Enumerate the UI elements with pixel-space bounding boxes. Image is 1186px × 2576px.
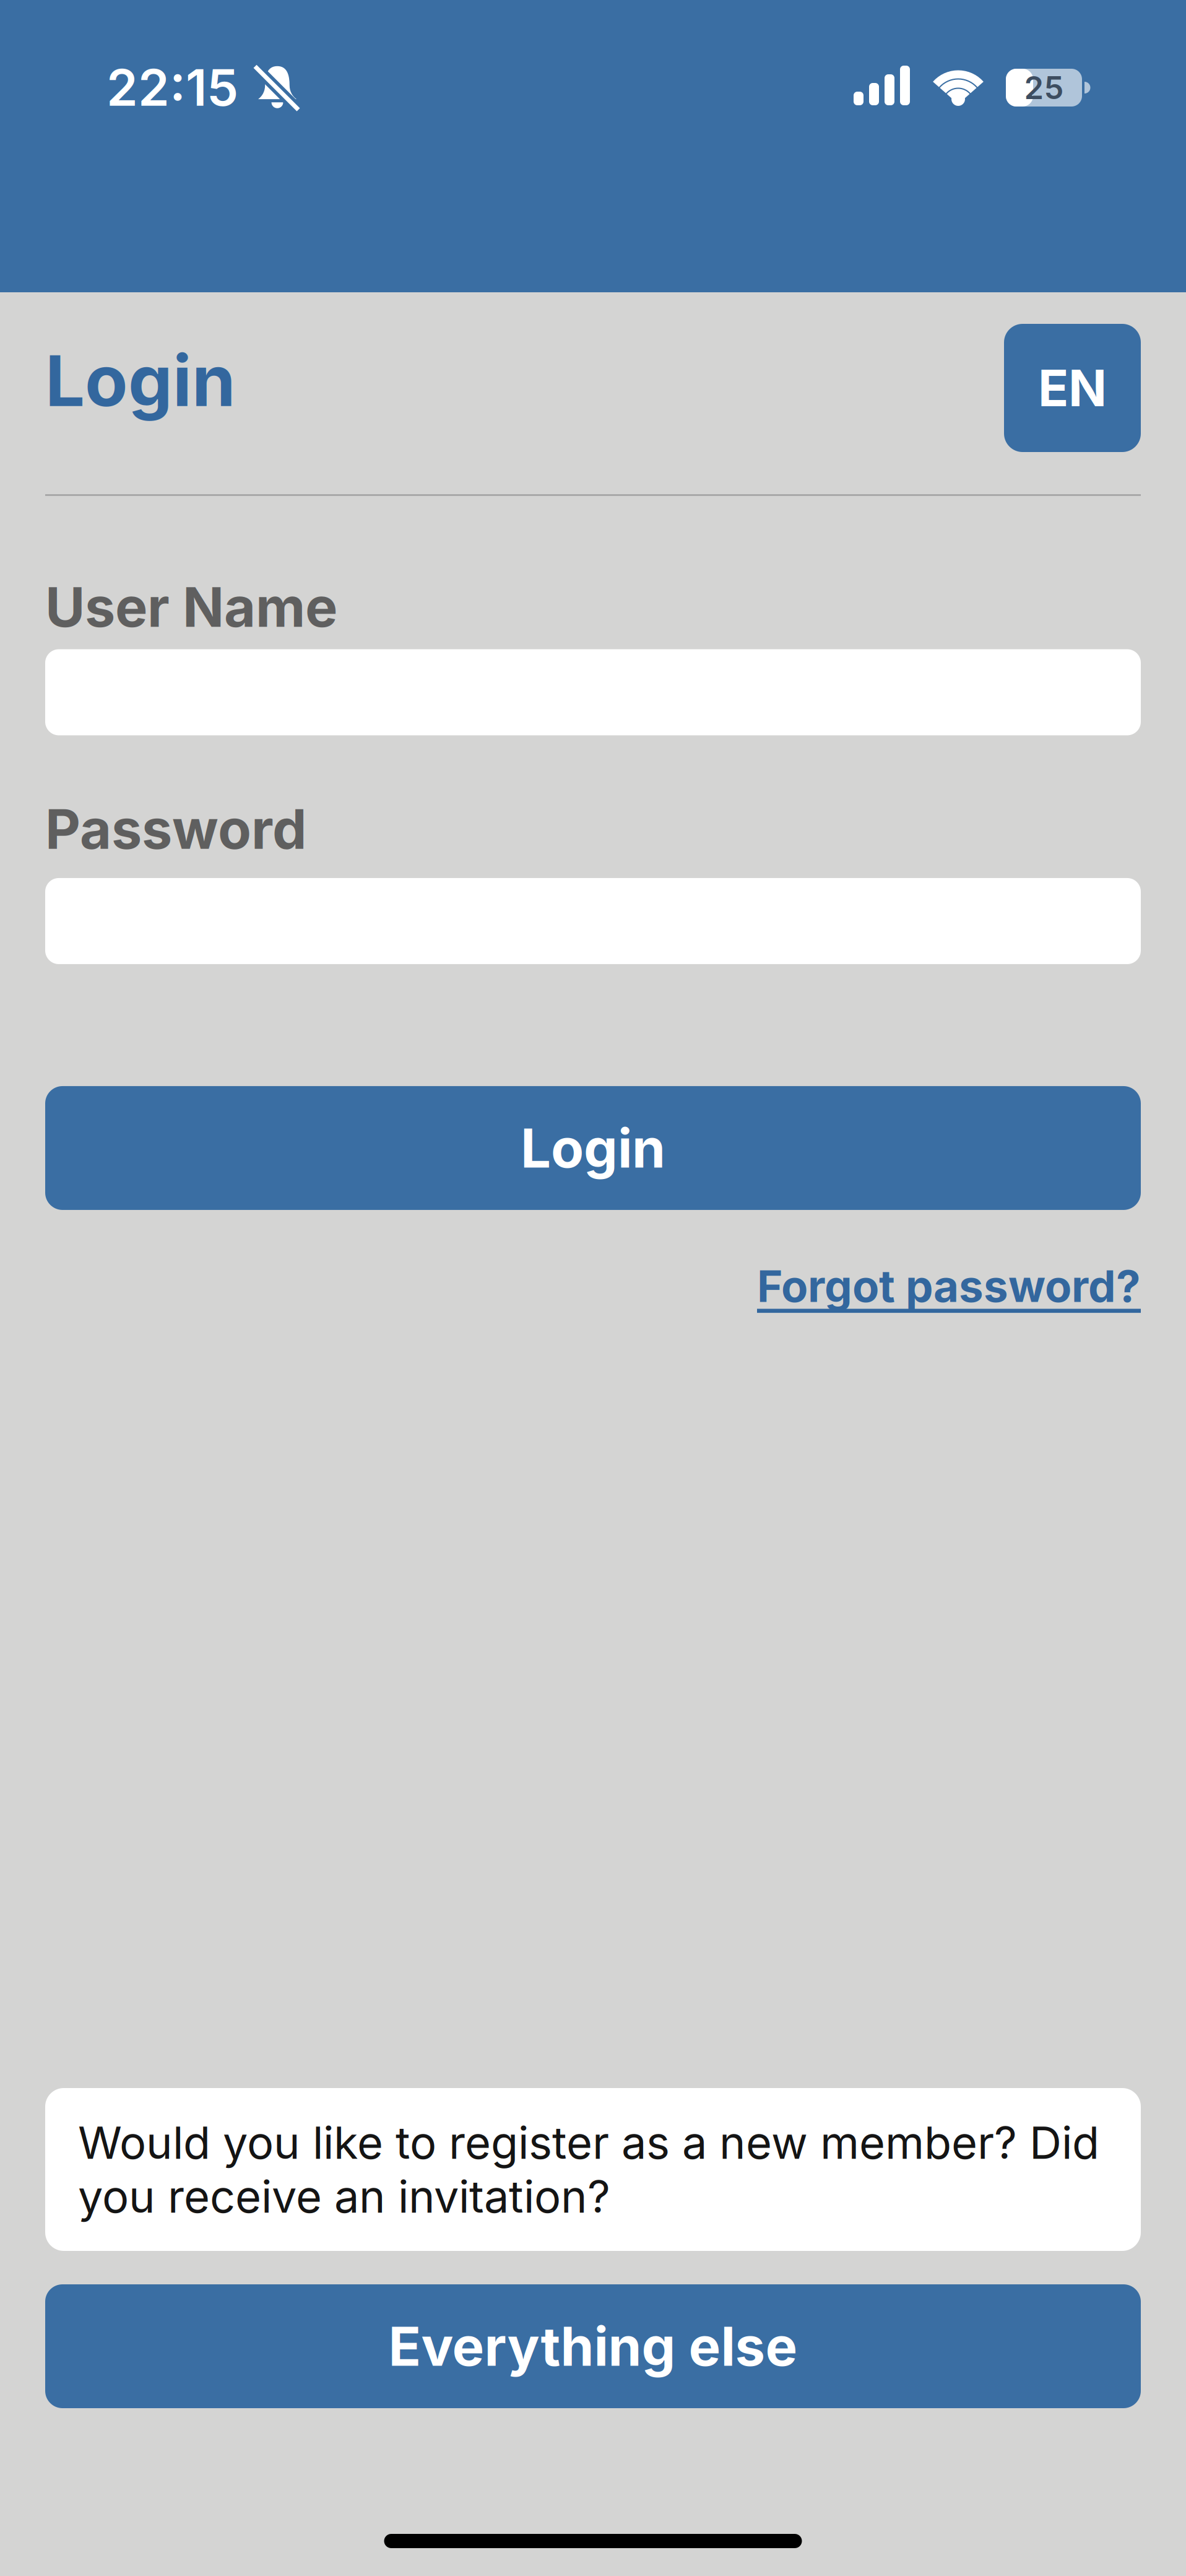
staticText: Would you like to register as a new memb… bbox=[78, 2116, 1099, 2223]
staticText: Password bbox=[45, 796, 306, 862]
staticText: Everything else bbox=[388, 2314, 798, 2379]
staticText: Login bbox=[521, 1116, 665, 1181]
staticText: 25 bbox=[1024, 69, 1064, 107]
staticText: User Name bbox=[45, 574, 337, 640]
staticText: Forgot password? bbox=[757, 1260, 1141, 1312]
staticText: 22:15 bbox=[106, 57, 238, 118]
staticText: EN bbox=[1038, 357, 1107, 418]
staticText: Login bbox=[45, 338, 236, 423]
